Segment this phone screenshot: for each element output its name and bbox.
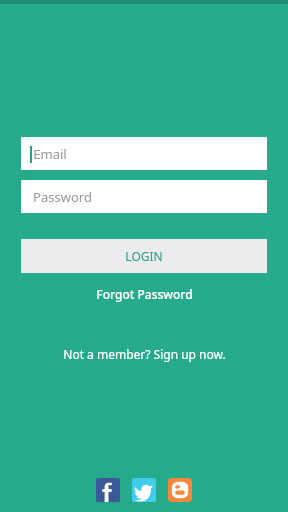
- staticText: Forgot Password: [96, 286, 193, 302]
- button[interactable]: Forgot Password: [0, 284, 288, 304]
- button[interactable]: Sign in with Facebook: [96, 478, 120, 502]
- staticText: Email: [33, 145, 67, 163]
- button[interactable]: LOGIN: [21, 239, 267, 273]
- staticText: Not a member? Sign up now.: [63, 346, 226, 362]
- button[interactable]: Email: [21, 137, 267, 170]
- staticText: Password: [33, 188, 92, 206]
- button[interactable]: Sign in with Twitter: [132, 478, 156, 502]
- staticText: LOGIN: [125, 248, 163, 264]
- button[interactable]: Sign in with Blogger: [168, 478, 192, 502]
- button[interactable]: Not a member? Sign up now.: [0, 344, 288, 364]
- button[interactable]: Password: [21, 180, 267, 213]
